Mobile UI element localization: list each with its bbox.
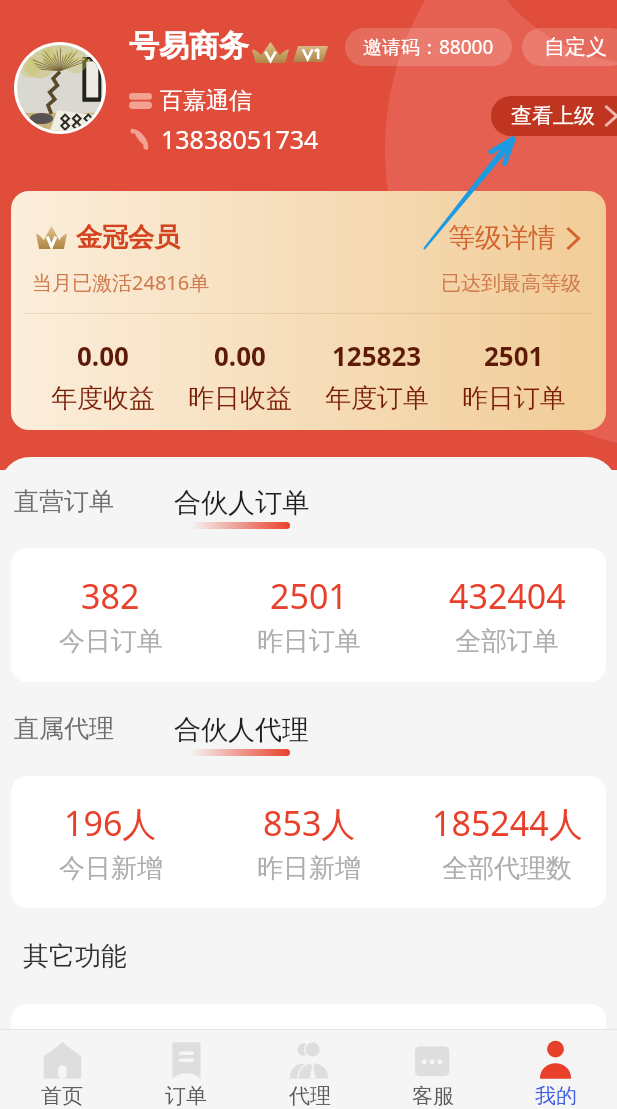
staticText: 昨日收益	[188, 382, 292, 415]
staticText: 昨日订单	[257, 625, 361, 658]
staticText: 昨日新增	[257, 852, 361, 885]
staticText: 我的	[535, 1083, 577, 1109]
button[interactable]: 直营订单	[6, 483, 122, 520]
staticText: 853人	[263, 800, 356, 846]
staticText: 直属代理	[14, 713, 114, 744]
button[interactable]: 合伙人代理	[166, 710, 317, 759]
staticText: 当月已激活24816单	[32, 269, 210, 296]
staticText: 13838051734	[161, 122, 319, 156]
button[interactable]: 432404	[408, 573, 606, 658]
staticText: 432404	[449, 573, 566, 619]
staticText: 0.00	[77, 338, 129, 373]
staticText: 382	[81, 573, 140, 619]
button[interactable]: 用户头像	[17, 45, 103, 131]
button[interactable]: 订单	[124, 1030, 248, 1109]
button[interactable]: 382	[11, 573, 210, 658]
staticText: 等级详情	[448, 221, 556, 255]
staticText: 125823	[332, 338, 422, 373]
staticText: 年度订单	[325, 382, 429, 415]
button[interactable]: 我的	[494, 1030, 617, 1109]
staticText: 百嘉通信	[160, 86, 252, 115]
staticText: 今日新增	[59, 852, 163, 885]
staticText: 邀请码：88000	[363, 34, 494, 60]
button[interactable]: 查看上级	[491, 96, 617, 136]
staticText: 订单	[165, 1083, 207, 1109]
staticText: 昨日订单	[462, 382, 566, 415]
staticText: 2501	[484, 338, 544, 373]
staticText: 全部订单	[455, 625, 559, 658]
button[interactable]: 合伙人订单	[166, 483, 317, 532]
staticText: 2501	[270, 573, 348, 619]
staticText: 首页	[41, 1083, 83, 1109]
staticText: 其它功能	[23, 940, 127, 973]
staticText: 0.00	[214, 338, 266, 373]
button[interactable]: 196人	[11, 800, 210, 885]
staticText: 合伙人代理	[174, 713, 309, 747]
staticText: 金冠会员	[76, 221, 180, 254]
button[interactable]: 853人	[210, 800, 408, 885]
staticText: 年度收益	[51, 382, 155, 415]
staticText: 合伙人订单	[174, 486, 309, 520]
button[interactable]: 2501	[210, 573, 408, 658]
staticText: 全部代理数	[442, 852, 572, 885]
staticText: 自定义	[544, 34, 607, 60]
staticText: 号易商务	[129, 27, 249, 65]
staticText: 已达到最高等级	[441, 271, 581, 296]
staticText: 185244人	[432, 800, 583, 846]
button[interactable]: 代理	[248, 1030, 371, 1109]
button[interactable]: 首页	[0, 1030, 124, 1109]
staticText: 查看上级	[511, 103, 595, 129]
button[interactable]: 邀请码：88000	[345, 28, 512, 66]
staticText: 代理	[289, 1083, 331, 1109]
staticText: 客服	[412, 1083, 454, 1109]
button[interactable]: 等级详情	[448, 221, 580, 255]
button[interactable]: 185244人	[408, 800, 606, 885]
staticText: 今日订单	[59, 625, 163, 658]
button[interactable]: 自定义	[522, 28, 617, 66]
button[interactable]: 直属代理	[6, 710, 122, 747]
staticText: 直营订单	[14, 486, 114, 517]
button[interactable]: 客服	[371, 1030, 494, 1109]
staticText: 196人	[64, 800, 157, 846]
